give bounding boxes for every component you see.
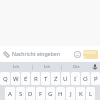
- button[interactable]: O: [81, 72, 90, 85]
- button[interactable]: S: [16, 87, 25, 100]
- staticText: P: [94, 75, 98, 83]
- button[interactable]: K: [76, 87, 85, 100]
- button[interactable]: Voice input: [90, 62, 100, 72]
- button[interactable]: Ich: [33, 62, 61, 72]
- button[interactable]: I: [71, 72, 80, 85]
- staticText: Ich: [44, 64, 51, 70]
- staticText: G: [48, 90, 53, 98]
- button[interactable]: T: [41, 72, 50, 85]
- button[interactable]: F: [36, 87, 45, 100]
- button[interactable]: Insert emoji: [71, 48, 83, 60]
- staticText: F: [39, 90, 43, 98]
- staticText: K: [79, 90, 83, 98]
- button[interactable]: SENDEN: [83, 50, 98, 59]
- staticText: W: [13, 75, 19, 83]
- staticText: T: [44, 75, 48, 83]
- staticText: Die: [73, 64, 80, 70]
- staticText: 2: [16, 74, 18, 77]
- staticText: 8: [76, 74, 78, 77]
- staticText: R: [34, 75, 38, 83]
- staticText: A: [8, 90, 12, 98]
- staticText: Q: [3, 75, 8, 83]
- button[interactable]: W: [11, 72, 20, 85]
- staticText: 0: [96, 74, 98, 77]
- button[interactable]: H: [56, 87, 65, 100]
- staticText: 5: [46, 74, 48, 77]
- staticText: U: [63, 75, 68, 83]
- button[interactable]: G: [46, 87, 55, 100]
- staticText: E: [24, 75, 28, 83]
- button[interactable]: A: [5, 87, 15, 100]
- staticText: Z: [54, 75, 58, 83]
- staticText: I: [74, 75, 77, 83]
- staticText: SENDEN: [83, 50, 98, 59]
- staticText: L: [89, 90, 93, 98]
- staticText: 6: [56, 74, 58, 77]
- staticText: 4: [36, 74, 38, 77]
- staticText: H: [58, 90, 63, 98]
- button[interactable]: Die: [62, 62, 90, 72]
- staticText: Nachricht eingeben: [12, 50, 71, 57]
- staticText: Ich: [13, 64, 20, 70]
- button[interactable]: Attach file: [0, 48, 12, 60]
- button[interactable]: D: [26, 87, 35, 100]
- staticText: 7: [66, 74, 68, 77]
- button[interactable]: U: [61, 72, 70, 85]
- staticText: D: [28, 90, 33, 98]
- button[interactable]: P: [91, 72, 100, 85]
- staticText: O: [83, 75, 88, 83]
- button[interactable]: Z: [51, 72, 60, 85]
- staticText: 1: [6, 74, 8, 77]
- staticText: J: [70, 90, 72, 98]
- button[interactable]: R: [31, 72, 40, 85]
- staticText: S: [19, 90, 23, 98]
- button[interactable]: Ich: [0, 62, 32, 72]
- button[interactable]: L: [86, 87, 95, 100]
- button[interactable]: J: [66, 87, 75, 100]
- staticText: 9: [86, 74, 88, 77]
- button[interactable]: Q: [0, 72, 10, 85]
- button[interactable]: E: [21, 72, 30, 85]
- staticText: 3: [26, 74, 28, 77]
